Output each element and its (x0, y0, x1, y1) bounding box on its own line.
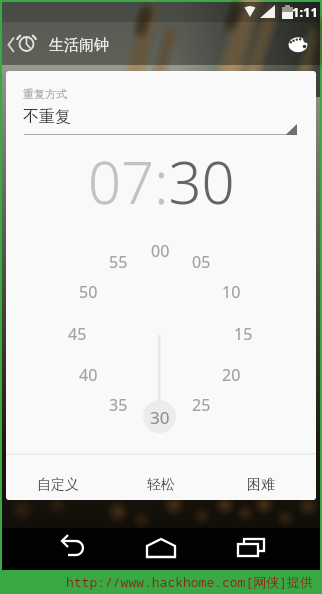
staticText: 50 (79, 281, 98, 303)
staticText: 1:11 (292, 3, 318, 21)
staticText: 轻松 (147, 476, 175, 494)
button[interactable] (2, 30, 20, 58)
staticText: 00 (151, 240, 170, 262)
staticText: 45 (68, 323, 87, 345)
staticText: 生活闹钟 (49, 36, 109, 55)
staticText: 30 (150, 406, 170, 429)
button[interactable] (40, 530, 100, 568)
button[interactable]: 35 (98, 393, 138, 417)
button[interactable] (130, 530, 190, 568)
button[interactable] (16, 101, 306, 137)
button[interactable] (282, 33, 316, 59)
staticText: 20 (222, 364, 241, 386)
button[interactable]: 05 (181, 250, 221, 274)
staticText: 40 (79, 364, 98, 386)
button[interactable]: 困难 (209, 462, 312, 500)
staticText: 07:30 (88, 142, 235, 221)
staticText: 15 (234, 323, 253, 345)
button[interactable]: 00 (140, 239, 180, 263)
staticText: 10 (222, 281, 241, 303)
button[interactable]: 30 (140, 405, 180, 429)
button[interactable]: 50 (68, 280, 108, 304)
button[interactable]: 40 (68, 363, 108, 387)
button[interactable]: 15 (223, 322, 263, 346)
button[interactable]: 自定义 (6, 462, 109, 500)
button[interactable]: 55 (98, 250, 138, 274)
staticText: 困难 (247, 476, 275, 494)
staticText: 35 (109, 394, 128, 416)
staticText: 不重复 (23, 107, 71, 127)
staticText: http://www.hackhome.com[网侠]提供 (66, 573, 314, 591)
staticText: 05 (192, 251, 211, 273)
button[interactable]: 25 (181, 393, 221, 417)
button[interactable]: 10 (211, 280, 251, 304)
button[interactable] (220, 530, 280, 568)
staticText: 重复方式 (23, 87, 67, 101)
button[interactable]: 45 (57, 322, 97, 346)
button[interactable]: 轻松 (109, 462, 212, 500)
staticText: 25 (192, 394, 211, 416)
staticText: 自定义 (37, 476, 79, 494)
staticText: 55 (109, 251, 128, 273)
button[interactable]: 20 (211, 363, 251, 387)
